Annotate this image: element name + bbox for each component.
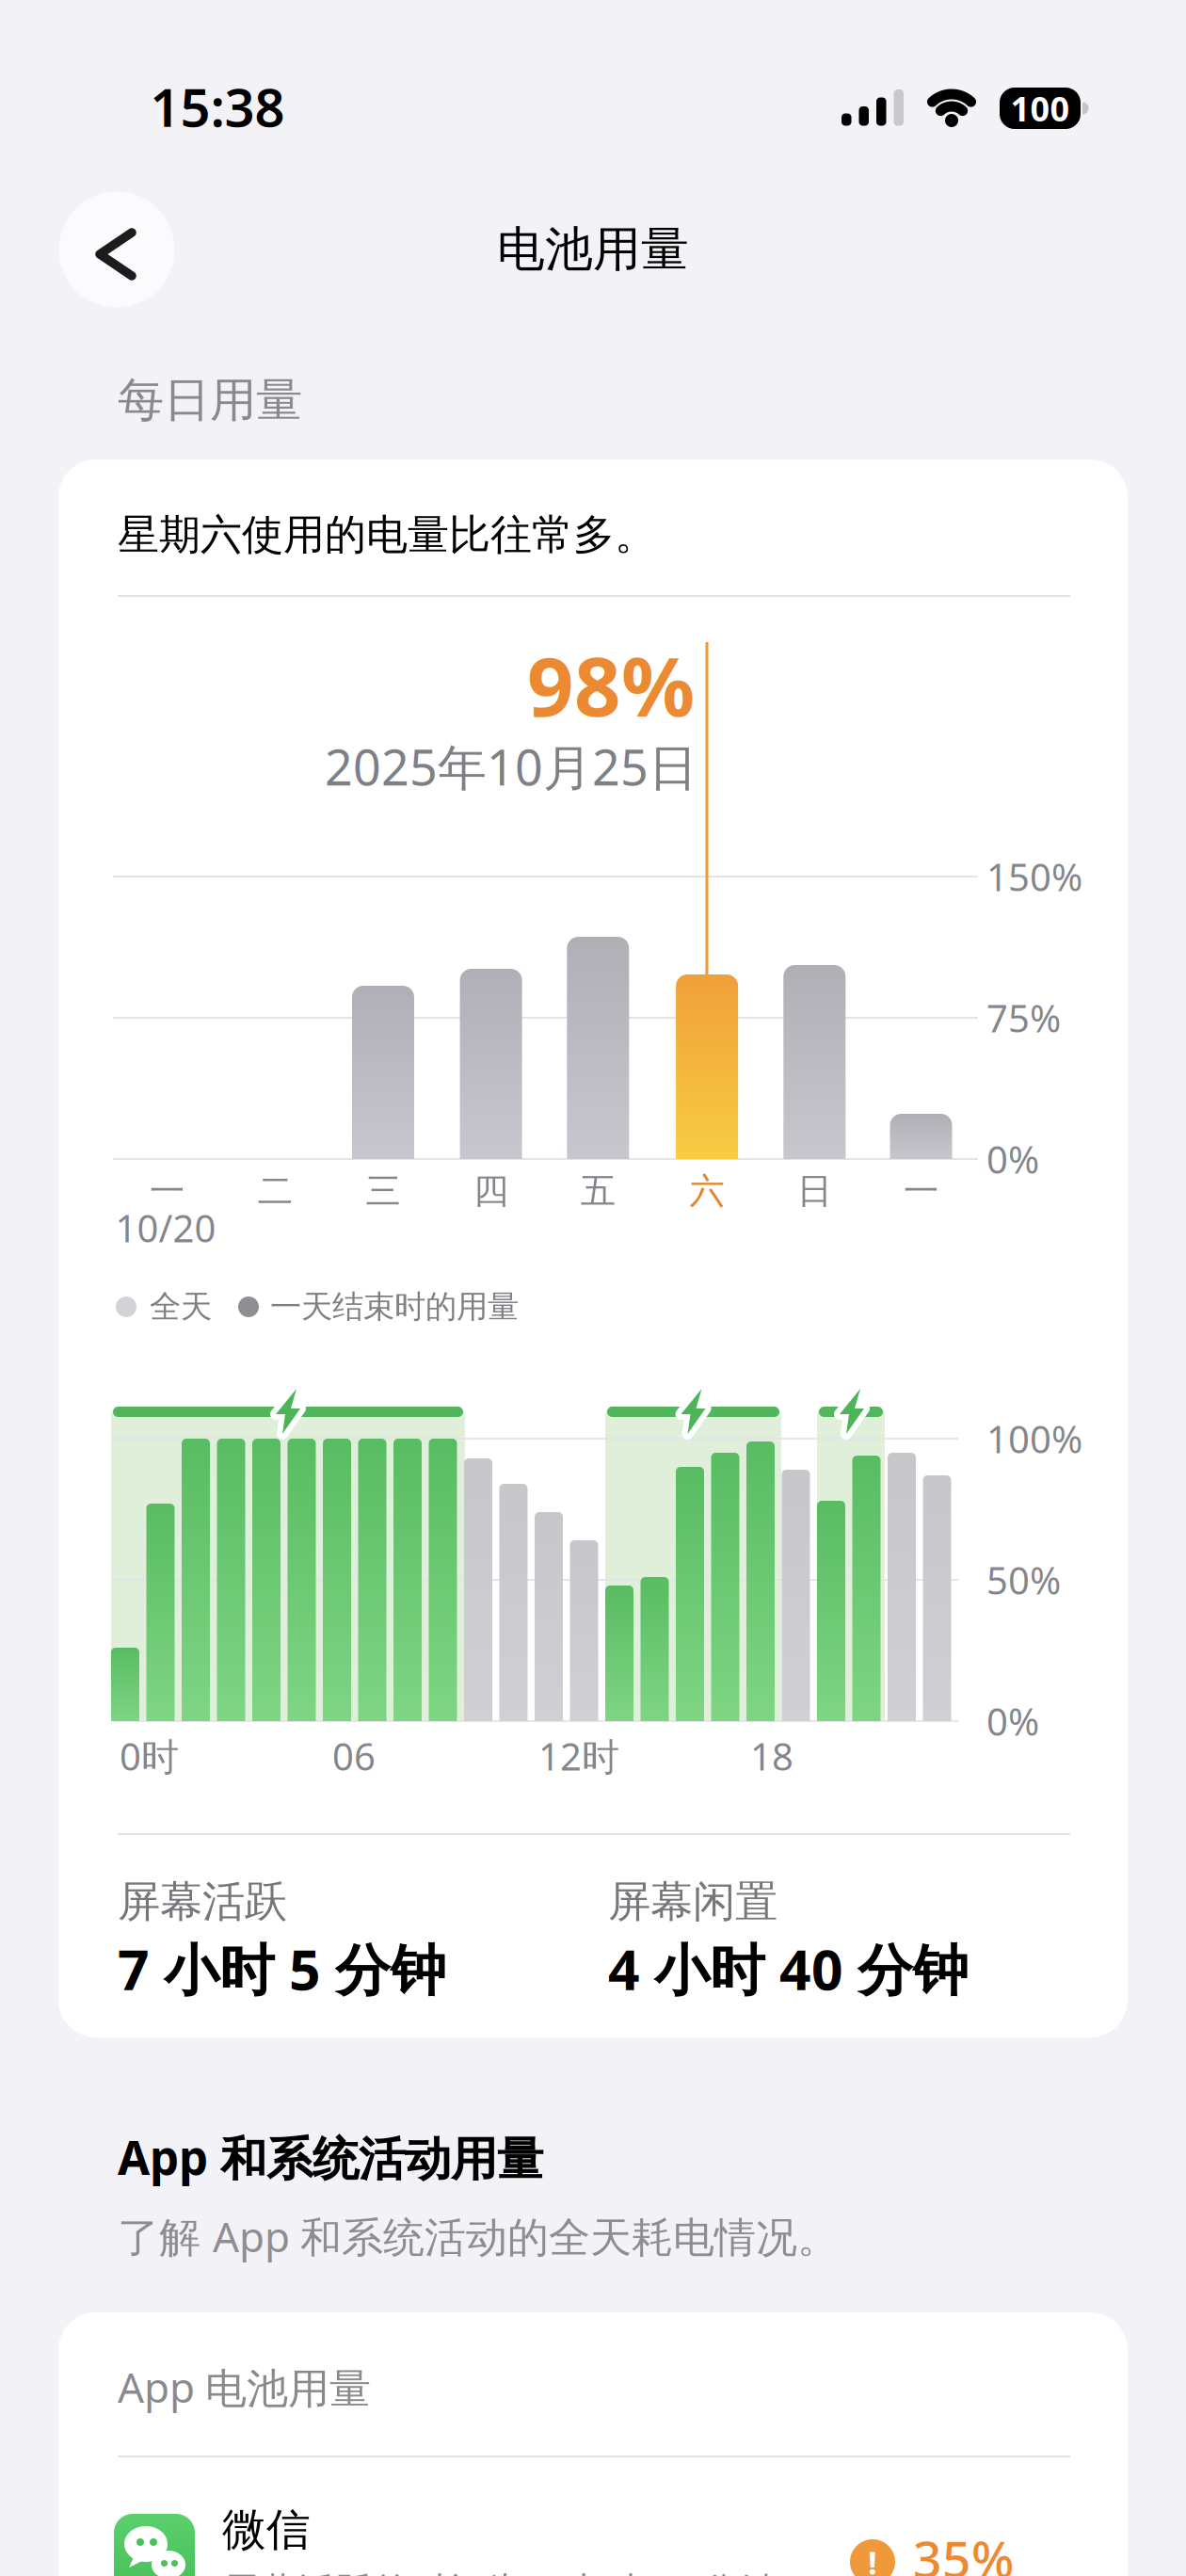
staticText: 0时 — [120, 1731, 179, 1781]
staticText: 4 小时 40 分钟 — [608, 1932, 969, 2005]
staticText: 06 — [332, 1731, 376, 1781]
staticText: 15:38 — [150, 71, 285, 141]
staticText: 一 — [904, 1169, 938, 1213]
staticText: 100 — [1010, 86, 1070, 131]
button[interactable]: 微信 — [113, 2510, 1186, 2576]
staticText: 12时 — [538, 1731, 619, 1781]
staticText: App 和系统活动用量 — [118, 2126, 543, 2188]
staticText: 0% — [986, 1696, 1039, 1746]
staticText: 一 — [150, 1169, 185, 1213]
staticText: 98% — [527, 630, 695, 739]
staticText: 2025年10月25日 — [325, 734, 697, 799]
staticText: 50% — [986, 1555, 1061, 1605]
staticText: 75% — [986, 993, 1061, 1043]
staticText: 每日用量 — [118, 372, 302, 429]
staticText: 屏幕闲置 — [608, 1876, 777, 1928]
staticText: 屏幕活跃的时间为 2 小时 21 分钟 — [222, 2565, 777, 2576]
staticText: 0% — [986, 1134, 1039, 1184]
staticText: 全天 — [150, 1288, 212, 1326]
staticText: 18 — [750, 1731, 793, 1781]
button[interactable]: 返回 — [59, 192, 175, 307]
staticText: 电池用量 — [497, 220, 689, 279]
staticText: App 电池用量 — [118, 2359, 371, 2414]
staticText: 六 — [690, 1169, 724, 1213]
staticText: 五 — [581, 1169, 615, 1213]
staticText: 三 — [366, 1169, 401, 1213]
staticText: 35% — [913, 2525, 1014, 2576]
staticText: 10/20 — [115, 1203, 216, 1253]
staticText: 四 — [474, 1169, 508, 1213]
staticText: 星期六使用的电量比往常多。 — [118, 509, 656, 560]
staticText: ! — [868, 2540, 877, 2576]
staticText: 日 — [797, 1169, 832, 1213]
staticText: 了解 App 和系统活动的全天耗电情况。 — [118, 2209, 839, 2264]
staticText: 微信 — [222, 2503, 311, 2557]
staticText: 二 — [258, 1169, 293, 1213]
staticText: 150% — [986, 852, 1082, 902]
staticText: 7 小时 5 分钟 — [118, 1932, 446, 2005]
staticText: 屏幕活跃 — [118, 1876, 287, 1928]
staticText: 一天结束时的用量 — [270, 1288, 519, 1326]
staticText: 100% — [986, 1414, 1082, 1464]
